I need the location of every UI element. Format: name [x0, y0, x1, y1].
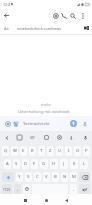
button[interactable]: R: [29, 146, 36, 156]
button[interactable]: U: [56, 146, 63, 156]
staticText: P: [85, 148, 88, 154]
staticText: Aa: [4, 26, 9, 31]
button[interactable]: L: [80, 159, 88, 169]
button[interactable]: Comma: [14, 184, 21, 194]
button[interactable]: P: [83, 146, 90, 156]
staticText: U: [58, 148, 62, 154]
staticText: L: [83, 161, 86, 167]
staticText: C: [36, 174, 39, 180]
button[interactable]: J: [60, 159, 68, 169]
button[interactable]: Aa: [0, 22, 92, 34]
button[interactable]: Cast: [49, 9, 62, 22]
staticText: D: [24, 161, 28, 167]
staticText: J: [63, 161, 65, 167]
button[interactable]: Back: [0, 9, 13, 22]
button[interactable]: Q: [2, 146, 9, 156]
button[interactable]: Home: [41, 195, 52, 205]
button[interactable]: M: [70, 172, 77, 182]
button[interactable]: N: [61, 172, 68, 182]
staticText: T: [40, 148, 43, 154]
button[interactable]: More options: [76, 9, 89, 22]
staticText: Q: [4, 148, 8, 154]
button[interactable]: C: [34, 172, 41, 182]
staticText: ,: [17, 186, 19, 192]
button[interactable]: X: [25, 172, 32, 182]
staticText: R: [31, 148, 34, 154]
button[interactable]: Shift: [2, 172, 14, 182]
button[interactable]: O: [74, 146, 81, 156]
staticText: M: [72, 174, 76, 180]
staticText: H: [52, 161, 56, 167]
button[interactable]: Send: [68, 118, 79, 129]
button[interactable]: G: [40, 159, 48, 169]
button[interactable]: Voice input: [80, 132, 91, 143]
button[interactable]: Enter: [79, 184, 90, 194]
staticText: A: [6, 161, 9, 167]
button[interactable]: Backspace: [79, 172, 90, 182]
button[interactable]: Clipboard: [41, 132, 52, 143]
button[interactable]: GIF: [27, 132, 38, 143]
staticText: G: [42, 161, 46, 167]
button[interactable]: Period: [70, 184, 77, 194]
button[interactable]: Settings: [54, 132, 65, 143]
button[interactable]: Add attachment: [2, 118, 13, 129]
staticText: F: [33, 161, 36, 167]
staticText: Y: [18, 174, 21, 180]
staticText: .: [73, 186, 75, 192]
button[interactable]: Reload: [80, 22, 92, 34]
button[interactable]: H: [50, 159, 58, 169]
staticText: mehr: [41, 102, 52, 107]
staticText: ?123: [3, 187, 11, 192]
button[interactable]: F: [31, 159, 38, 169]
button[interactable]: D: [22, 159, 29, 169]
staticText: B: [54, 174, 57, 180]
button[interactable]: K: [70, 159, 78, 169]
button[interactable]: T: [38, 146, 45, 156]
button[interactable]: A: [4, 159, 11, 169]
staticText: O: [76, 148, 80, 154]
button[interactable]: Translate: [67, 132, 78, 143]
button[interactable]: Recents: [20, 195, 31, 205]
button[interactable]: W: [11, 146, 18, 156]
button[interactable]: Back: [61, 195, 72, 205]
staticText: Unterhaltung mit notebook: [18, 109, 70, 114]
button[interactable]: B: [52, 172, 59, 182]
staticText: K: [73, 161, 76, 167]
staticText: E: [22, 148, 25, 154]
staticText: 12:47: [3, 2, 13, 7]
button[interactable]: S: [13, 159, 20, 169]
button[interactable]: E: [20, 146, 27, 156]
button[interactable]: Stickers: [10, 118, 21, 129]
staticText: GIF: [30, 136, 35, 140]
staticText: V: [45, 174, 48, 180]
button[interactable]: Back: [1, 132, 12, 143]
staticText: Z: [49, 148, 52, 154]
button[interactable]: Symbols: [2, 184, 12, 194]
button[interactable]: V: [43, 172, 50, 182]
staticText: Textnachricht: [23, 121, 50, 127]
button[interactable]: Search: [66, 9, 79, 22]
staticText: X: [27, 174, 30, 180]
button[interactable]: Emoji: [23, 184, 30, 194]
button[interactable]: Z: [47, 146, 54, 156]
staticText: S: [15, 161, 18, 167]
button[interactable]: Y: [16, 172, 23, 182]
button[interactable]: Voice message: [79, 118, 90, 129]
staticText: W: [13, 148, 17, 154]
staticText: N: [63, 174, 67, 180]
button[interactable]: I: [65, 146, 72, 156]
staticText: I: [68, 148, 70, 154]
button[interactable]: Call: [57, 9, 70, 22]
button[interactable]: Themes: [14, 132, 25, 143]
staticText: notebookcheck.com/news: [17, 26, 62, 31]
